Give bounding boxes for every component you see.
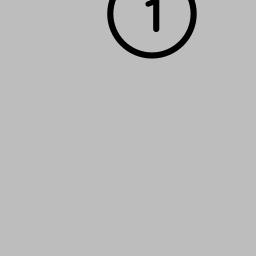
- button[interactable]: Step 1: [0, 0, 256, 256]
